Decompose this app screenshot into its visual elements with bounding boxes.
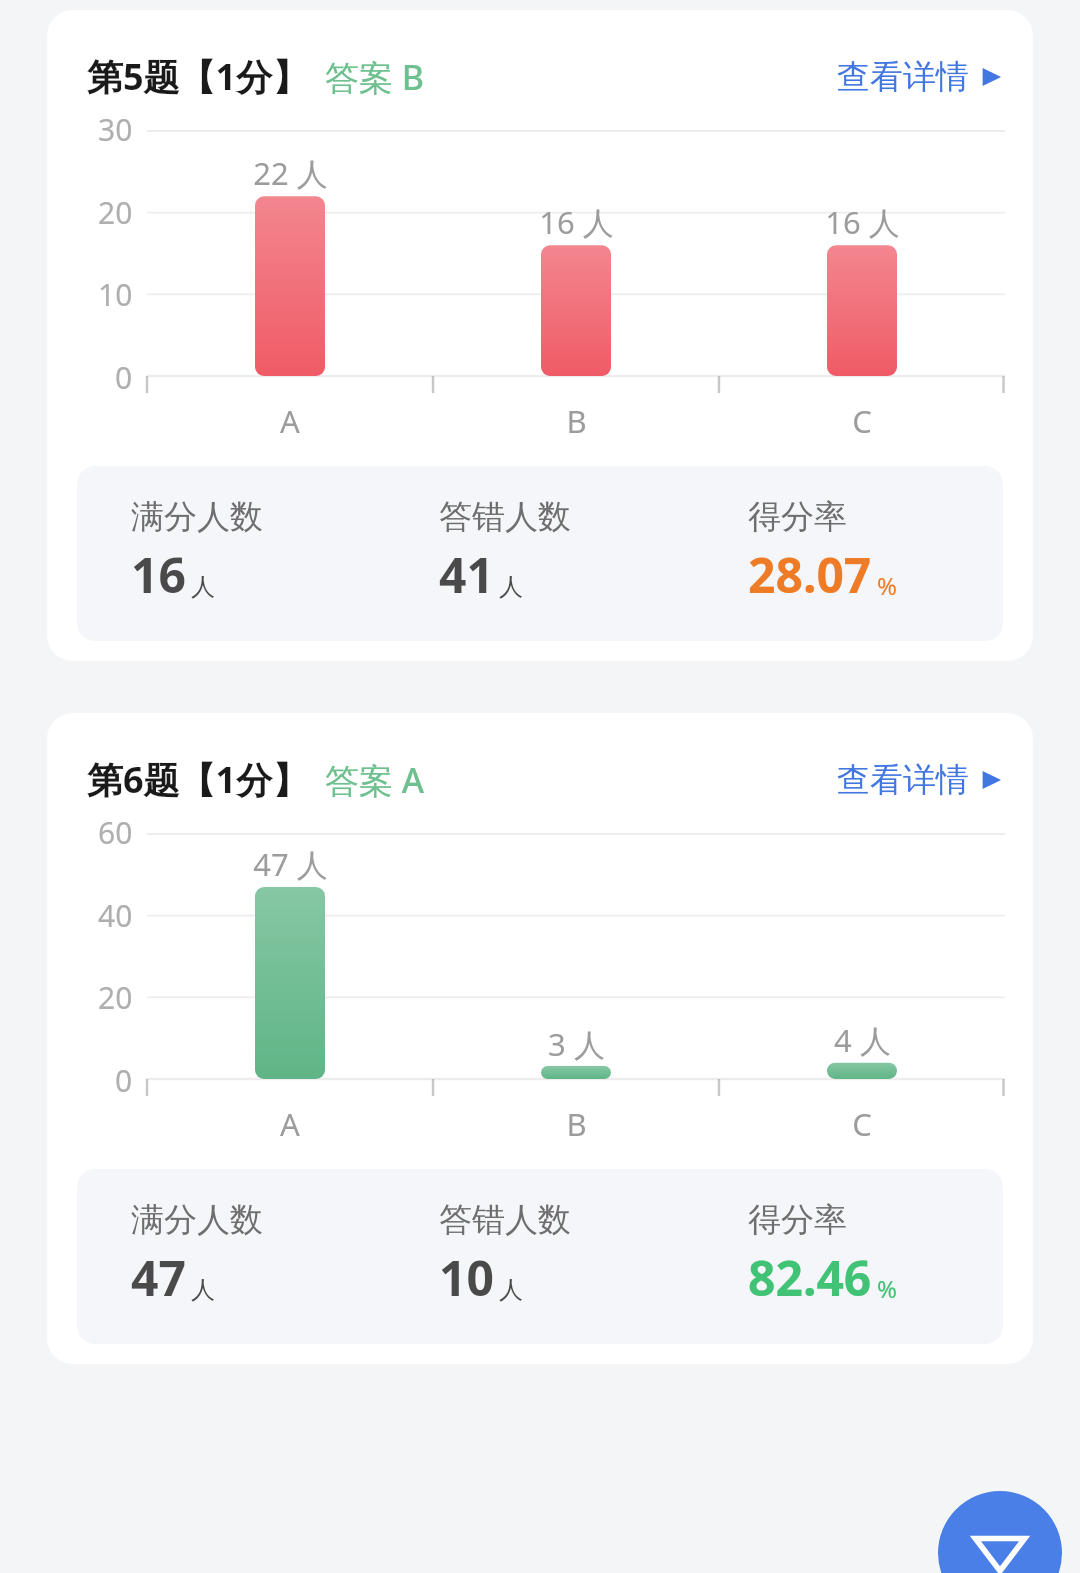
staticText: 47 bbox=[131, 1245, 186, 1310]
staticText: % bbox=[877, 569, 897, 602]
staticText: 得分率 bbox=[748, 1199, 847, 1241]
staticText: 41 bbox=[439, 542, 494, 607]
staticText: 人 bbox=[499, 1275, 523, 1305]
staticText: 16 bbox=[131, 542, 186, 607]
staticText: 28.07 bbox=[748, 542, 872, 607]
staticText: 3 人 bbox=[548, 1023, 605, 1065]
staticText: 满分人数 bbox=[131, 1199, 263, 1241]
staticText: 第6题【1分】 bbox=[87, 755, 309, 804]
staticText: 20 bbox=[98, 977, 133, 1018]
staticText: 4 人 bbox=[834, 1019, 891, 1061]
staticText: 20 bbox=[98, 192, 133, 233]
staticText: 16 人 bbox=[539, 201, 614, 243]
staticText: 47 人 bbox=[253, 843, 328, 885]
staticText: B bbox=[566, 400, 587, 442]
staticText: 10 bbox=[439, 1245, 494, 1310]
staticText: 满分人数 bbox=[131, 496, 263, 538]
staticText: 答错人数 bbox=[439, 496, 571, 538]
staticText: 答案 A bbox=[325, 757, 425, 803]
staticText: % bbox=[877, 1272, 897, 1305]
staticText: 10 bbox=[98, 274, 133, 315]
staticText: 答错人数 bbox=[439, 1199, 571, 1241]
staticText: C bbox=[852, 400, 872, 442]
button[interactable]: 第6题【1分】 bbox=[47, 713, 1033, 1364]
staticText: 第5题【1分】 bbox=[87, 52, 309, 101]
staticText: 得分率 bbox=[748, 496, 847, 538]
staticText: 16 人 bbox=[825, 201, 900, 243]
button[interactable]: 查看详情 bbox=[837, 56, 1003, 98]
staticText: 30 bbox=[98, 109, 133, 150]
staticText: A bbox=[280, 1103, 300, 1145]
staticText: A bbox=[280, 400, 300, 442]
staticText: 查看详情 bbox=[837, 759, 969, 801]
staticText: 人 bbox=[499, 572, 523, 602]
button[interactable]: 查看详情 bbox=[837, 759, 1003, 801]
staticText: B bbox=[566, 1103, 587, 1145]
staticText: 60 bbox=[98, 812, 133, 853]
staticText: C bbox=[852, 1103, 872, 1145]
staticText: 人 bbox=[191, 1275, 215, 1305]
staticText: 22 人 bbox=[253, 152, 328, 194]
staticText: 0 bbox=[115, 357, 133, 398]
staticText: 查看详情 bbox=[837, 56, 969, 98]
staticText: 40 bbox=[98, 895, 133, 936]
staticText: 答案 B bbox=[325, 54, 425, 100]
staticText: 人 bbox=[191, 572, 215, 602]
button[interactable]: 第5题【1分】 bbox=[47, 10, 1033, 661]
button[interactable]: Filter bbox=[938, 1491, 1062, 1573]
staticText: 82.46 bbox=[748, 1245, 872, 1310]
staticText: 0 bbox=[115, 1060, 133, 1101]
